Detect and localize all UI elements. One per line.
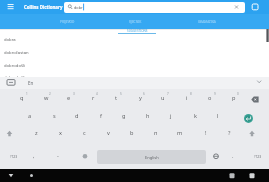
staticText: d: [75, 112, 79, 120]
button[interactable]: ?123: [248, 149, 268, 163]
staticText: 2: [49, 92, 51, 96]
staticText: l: [217, 112, 219, 120]
staticText: a: [28, 112, 32, 120]
staticText: !: [205, 129, 207, 137]
staticText: h: [146, 112, 150, 120]
button[interactable]: w: [39, 91, 53, 105]
button[interactable]: dobrodošli: [0, 59, 269, 72]
button[interactable]: o: [203, 91, 217, 105]
staticText: j: [170, 112, 172, 120]
button[interactable]: r: [86, 91, 100, 105]
staticText: dobročastan: [4, 50, 29, 56]
staticText: 9: [214, 92, 216, 96]
staticText: Collins Dictionary: [24, 4, 63, 10]
button[interactable]: j: [164, 109, 178, 123]
button[interactable]: l: [211, 109, 225, 123]
staticText: -: [57, 152, 59, 160]
button[interactable]: x: [53, 126, 67, 140]
staticText: ,: [33, 152, 35, 160]
staticText: z: [35, 129, 38, 137]
button[interactable]: h: [141, 109, 155, 123]
staticText: ?: [228, 129, 231, 137]
button[interactable]: RJECNIK: [118, 15, 152, 29]
staticText: i: [186, 94, 188, 102]
button[interactable]: s: [47, 109, 61, 123]
button[interactable]: PRIJEVOD: [50, 15, 84, 29]
button[interactable]: [3, 0, 21, 14]
staticText: o: [208, 94, 212, 102]
button[interactable]: [64, 2, 245, 13]
staticText: dobrodošli: [4, 63, 26, 69]
button[interactable]: e: [62, 91, 76, 105]
button[interactable]: -: [52, 149, 64, 163]
staticText: GRAMATIKA: [198, 20, 216, 24]
staticText: 3: [73, 92, 75, 96]
staticText: f: [100, 112, 102, 120]
button[interactable]: [97, 150, 206, 164]
staticText: q: [20, 94, 24, 102]
button[interactable]: ?123: [4, 149, 24, 163]
staticText: English: [145, 155, 159, 160]
staticText: En: [28, 80, 34, 86]
staticText: u: [161, 94, 165, 102]
staticText: w: [44, 94, 49, 102]
staticText: 7: [167, 92, 169, 96]
button[interactable]: [249, 1, 262, 13]
button[interactable]: k: [188, 109, 202, 123]
staticText: 4: [96, 92, 98, 96]
button[interactable]: [25, 169, 39, 182]
staticText: dobra: [4, 37, 16, 43]
staticText: m: [177, 129, 183, 137]
staticText: 6: [143, 92, 145, 96]
staticText: t: [115, 94, 118, 102]
button[interactable]: z: [29, 126, 43, 140]
staticText: e: [67, 94, 71, 102]
staticText: SUGGESTIONS: [127, 29, 148, 33]
button[interactable]: GRAMATIKA: [190, 15, 224, 29]
staticText: ?123: [254, 154, 262, 158]
staticText: s: [53, 112, 56, 120]
button[interactable]: ,: [28, 149, 40, 163]
staticText: ?123: [10, 154, 18, 158]
button[interactable]: .: [227, 149, 239, 163]
button[interactable]: [4, 169, 18, 182]
staticText: dobrodošlica: [4, 75, 30, 81]
staticText: x: [59, 129, 62, 137]
staticText: 1: [26, 92, 28, 96]
button[interactable]: m: [173, 126, 187, 140]
button[interactable]: g: [117, 109, 131, 123]
staticText: PRIJEVOD: [60, 20, 75, 24]
button[interactable]: dobrodošlica: [0, 71, 269, 84]
button[interactable]: t: [109, 91, 123, 105]
button[interactable]: c: [77, 126, 91, 140]
button[interactable]: dobra: [0, 33, 269, 46]
button[interactable]: v: [101, 126, 115, 140]
staticText: n: [154, 129, 158, 137]
staticText: y: [139, 94, 142, 102]
button[interactable]: u: [156, 91, 170, 105]
staticText: 0: [237, 92, 239, 96]
staticText: k: [194, 112, 197, 120]
button[interactable]: dobročastan: [0, 46, 269, 59]
button[interactable]: b: [125, 126, 139, 140]
button[interactable]: q: [15, 91, 29, 105]
staticText: p: [232, 94, 236, 102]
button[interactable]: !: [199, 126, 213, 140]
staticText: c: [83, 129, 86, 137]
button[interactable]: y: [133, 91, 147, 105]
staticText: b: [130, 129, 134, 137]
button[interactable]: p: [227, 91, 241, 105]
staticText: r: [92, 94, 95, 102]
staticText: RJECNIK: [129, 20, 142, 24]
button[interactable]: f: [94, 109, 108, 123]
button[interactable]: i: [180, 91, 194, 105]
staticText: 5: [120, 92, 122, 96]
staticText: v: [107, 129, 110, 137]
button[interactable]: n: [149, 126, 163, 140]
button[interactable]: En: [22, 76, 40, 90]
staticText: g: [122, 112, 126, 120]
staticText: 8: [190, 92, 192, 96]
button[interactable]: d: [70, 109, 84, 123]
button[interactable]: a: [23, 109, 37, 123]
button[interactable]: ?: [222, 126, 236, 140]
